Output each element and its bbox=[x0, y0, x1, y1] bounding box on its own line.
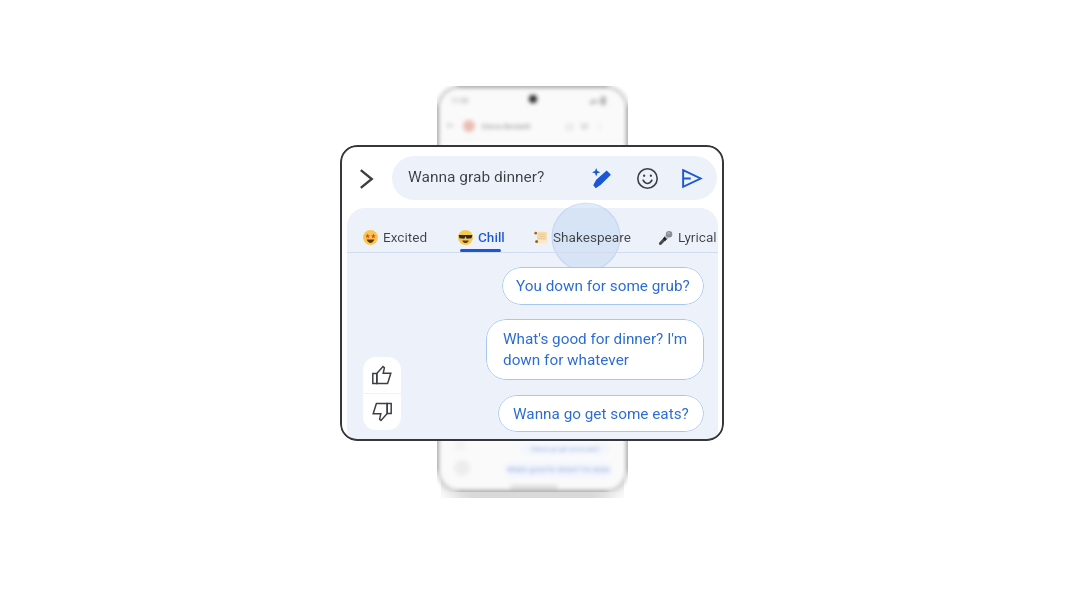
staticText: ▢ ☏ ⋮ bbox=[566, 122, 604, 131]
staticText: down for whatever bbox=[503, 351, 629, 369]
button[interactable]: Lyrical bbox=[658, 208, 717, 253]
button[interactable]: Magic compose bbox=[582, 158, 622, 198]
button[interactable]: Excited bbox=[363, 208, 428, 253]
staticText: Shakespeare bbox=[553, 229, 631, 245]
button[interactable]: What's good for dinner? I'm bbox=[486, 319, 704, 380]
staticText: ◢ ▴ ▊ bbox=[589, 97, 607, 105]
staticText: What's good for dinner? I'm down bbox=[507, 466, 611, 474]
staticText: Wanna grab dinner? bbox=[408, 168, 545, 186]
staticText: You down for some grub? bbox=[516, 277, 690, 295]
staticText: Lyrical bbox=[678, 229, 717, 245]
staticText: Wanna go get some eats? bbox=[531, 445, 600, 452]
staticText: Elena Beckett bbox=[482, 122, 531, 131]
staticText: 11:30 bbox=[451, 97, 469, 105]
button[interactable]: Wanna grab dinner? bbox=[392, 156, 717, 200]
button[interactable]: Thumb up bbox=[363, 357, 401, 393]
button[interactable]: Thumb down bbox=[363, 394, 401, 430]
button[interactable]: Wanna go get some eats? bbox=[498, 395, 704, 432]
button[interactable]: Send bbox=[671, 158, 712, 199]
button[interactable]: Expand bbox=[344, 157, 388, 201]
staticText: What's good for dinner? I'm bbox=[503, 330, 688, 348]
staticText: Excited bbox=[383, 229, 428, 245]
staticText: Chill bbox=[478, 229, 505, 245]
button[interactable]: Shakespeare bbox=[533, 208, 631, 253]
button[interactable]: Chill bbox=[458, 208, 505, 253]
staticText: Wanna go get some eats? bbox=[513, 405, 689, 423]
button[interactable]: Emoji bbox=[627, 158, 668, 199]
button[interactable]: You down for some grub? bbox=[502, 267, 704, 305]
staticText: ← bbox=[447, 120, 455, 130]
